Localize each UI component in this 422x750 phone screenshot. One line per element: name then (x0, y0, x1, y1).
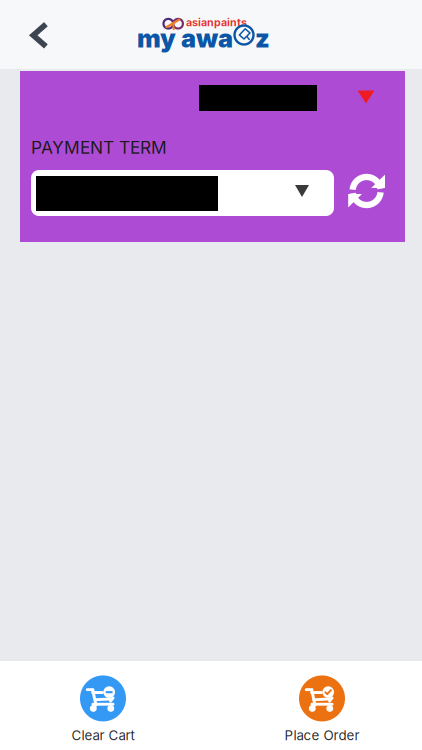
staticText: Place Order (284, 727, 359, 743)
button[interactable]: Clear Cart (28, 661, 178, 750)
staticText: my awa (137, 23, 233, 54)
staticText: PAYMENT TERM (31, 137, 167, 158)
button[interactable]: Refresh (342, 167, 392, 215)
button[interactable]: Back (12, 7, 64, 63)
button[interactable]: Place Order (247, 661, 397, 750)
button[interactable] (31, 170, 334, 216)
staticText: asianpaints (186, 16, 247, 29)
staticText: z (255, 23, 270, 54)
staticText: Clear Cart (71, 727, 134, 743)
button[interactable]: Show more (348, 81, 384, 113)
